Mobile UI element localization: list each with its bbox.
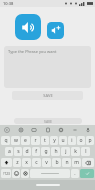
staticText: x <box>25 159 28 166</box>
button[interactable]: ?123 <box>1 169 11 178</box>
button[interactable]: . <box>71 169 79 178</box>
staticText: h <box>54 148 58 155</box>
button[interactable]: s <box>14 147 22 156</box>
button[interactable]: Add phrase <box>47 22 64 39</box>
staticText: j <box>65 148 67 155</box>
staticText: a <box>8 148 11 155</box>
button[interactable]: Settings <box>57 126 65 134</box>
button[interactable]: j <box>61 147 70 156</box>
staticText: z <box>16 159 19 166</box>
button[interactable]: c <box>32 158 41 167</box>
button[interactable]: Enter <box>80 169 94 178</box>
button[interactable]: r <box>31 136 40 145</box>
button[interactable]: o <box>77 136 85 145</box>
button[interactable]: Voice input <box>84 126 92 134</box>
button[interactable]: y <box>50 136 58 145</box>
button[interactable]: Back <box>3 126 11 134</box>
button[interactable]: x <box>22 158 31 167</box>
button[interactable]: Themes <box>17 126 25 134</box>
staticText: v <box>45 159 48 166</box>
button[interactable]: g <box>41 147 50 156</box>
staticText: q <box>4 137 8 144</box>
staticText: c <box>35 159 38 166</box>
staticText: SAVE <box>43 93 53 98</box>
button[interactable]: Keyboard settings <box>21 169 29 178</box>
staticText: s <box>17 148 20 155</box>
button[interactable]: p <box>86 136 94 145</box>
button[interactable]: v <box>42 158 51 167</box>
button[interactable]: n <box>62 158 71 167</box>
button[interactable]: e <box>21 136 30 145</box>
staticText: w <box>14 137 18 144</box>
button[interactable]: Emoji <box>12 169 20 178</box>
staticText: SAVE <box>44 119 53 124</box>
button[interactable]: SAVE <box>14 118 82 124</box>
button[interactable]: l <box>81 147 90 156</box>
staticText: g <box>44 148 48 155</box>
button[interactable]: SAVE <box>12 91 83 100</box>
staticText: . <box>74 170 76 177</box>
button[interactable]: More <box>71 126 79 134</box>
button[interactable]: d <box>23 147 31 156</box>
button[interactable]: GIF <box>30 126 38 134</box>
staticText: i <box>71 137 73 144</box>
staticText: d <box>25 148 29 155</box>
staticText: p <box>88 137 92 144</box>
staticText: m <box>74 159 79 166</box>
staticText: u <box>61 137 65 144</box>
button[interactable]: i <box>68 136 76 145</box>
button[interactable]: q <box>1 136 10 145</box>
button[interactable]: Clipboard <box>44 126 52 134</box>
staticText: f <box>35 148 37 155</box>
button[interactable]: b <box>52 158 61 167</box>
staticText: n <box>65 159 69 166</box>
button[interactable]: Type the Phrase you want <box>4 46 91 88</box>
staticText: Type the Phrase you want <box>8 49 57 54</box>
button[interactable]: a <box>5 147 13 156</box>
button[interactable]: f <box>32 147 40 156</box>
staticText: o <box>79 137 83 144</box>
staticText: e <box>24 137 27 144</box>
button[interactable]: Space <box>30 169 70 178</box>
staticText: t <box>44 137 46 144</box>
button[interactable]: w <box>11 136 20 145</box>
staticText: y <box>53 137 56 144</box>
button[interactable]: t <box>41 136 49 145</box>
button[interactable]: Backspace <box>82 158 94 167</box>
staticText: l <box>85 148 87 155</box>
button[interactable]: Shift <box>1 158 12 167</box>
button[interactable]: z <box>13 158 21 167</box>
button[interactable]: Speak phrase <box>15 14 41 40</box>
button[interactable]: u <box>59 136 67 145</box>
button[interactable]: m <box>72 158 81 167</box>
button[interactable]: k <box>71 147 80 156</box>
staticText: r <box>34 137 37 144</box>
button[interactable]: h <box>51 147 60 156</box>
staticText: b <box>55 159 59 166</box>
staticText: 10:38 <box>3 1 14 6</box>
staticText: ?123 <box>3 172 10 176</box>
staticText: k <box>74 148 77 155</box>
